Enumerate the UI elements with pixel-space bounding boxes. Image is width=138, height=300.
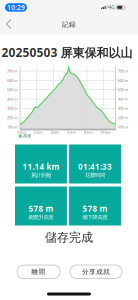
staticText: 高度 bbox=[23, 133, 31, 138]
staticText: 儲存完成 bbox=[45, 230, 93, 245]
staticText: 01:41:33 bbox=[78, 161, 112, 172]
staticText: 分享成就 bbox=[82, 268, 110, 276]
staticText: 記録 bbox=[62, 20, 76, 29]
staticText: 300 m bbox=[117, 106, 128, 111]
staticText: 700 m bbox=[7, 68, 18, 74]
staticText: 4 km bbox=[50, 129, 59, 135]
staticText: 10:29 bbox=[7, 3, 25, 12]
button[interactable]: Back bbox=[2, 14, 15, 33]
staticText: 0 km bbox=[17, 129, 26, 135]
staticText: 400 m bbox=[117, 96, 128, 102]
staticText: 200 m bbox=[7, 115, 18, 120]
staticText: 累計距離 bbox=[31, 172, 51, 179]
staticText: 6 km bbox=[67, 129, 76, 135]
staticText: 花費時間 bbox=[85, 172, 105, 179]
staticText: 100 m bbox=[117, 124, 128, 130]
staticText: 4G bbox=[108, 4, 115, 11]
staticText: 總下降高度 bbox=[82, 214, 107, 221]
staticText: 離開 bbox=[31, 268, 45, 276]
staticText: 600 m bbox=[7, 78, 18, 83]
staticText: 500 m bbox=[7, 87, 18, 92]
staticText: 總爬升高度 bbox=[28, 214, 53, 221]
staticText: 8 km bbox=[84, 129, 93, 135]
staticText: 400 m bbox=[7, 96, 18, 102]
staticText: 700 m bbox=[117, 68, 128, 74]
staticText: 11.14 km bbox=[22, 161, 59, 172]
staticText: 200 m bbox=[117, 115, 128, 120]
staticText: 600 m bbox=[117, 78, 128, 83]
staticText: 20250503 屏東保和以山 bbox=[1, 44, 132, 60]
staticText: 578 m bbox=[82, 203, 107, 214]
staticText: 578 m bbox=[28, 203, 53, 214]
button[interactable]: 分享成就 bbox=[70, 265, 122, 279]
staticText: 300 m bbox=[7, 106, 18, 111]
staticText: 10 km bbox=[100, 129, 111, 135]
staticText: 2 km bbox=[34, 129, 43, 135]
staticText: 100 m bbox=[7, 124, 18, 130]
staticText: 500 m bbox=[117, 87, 128, 92]
button[interactable]: 離開 bbox=[17, 265, 60, 279]
